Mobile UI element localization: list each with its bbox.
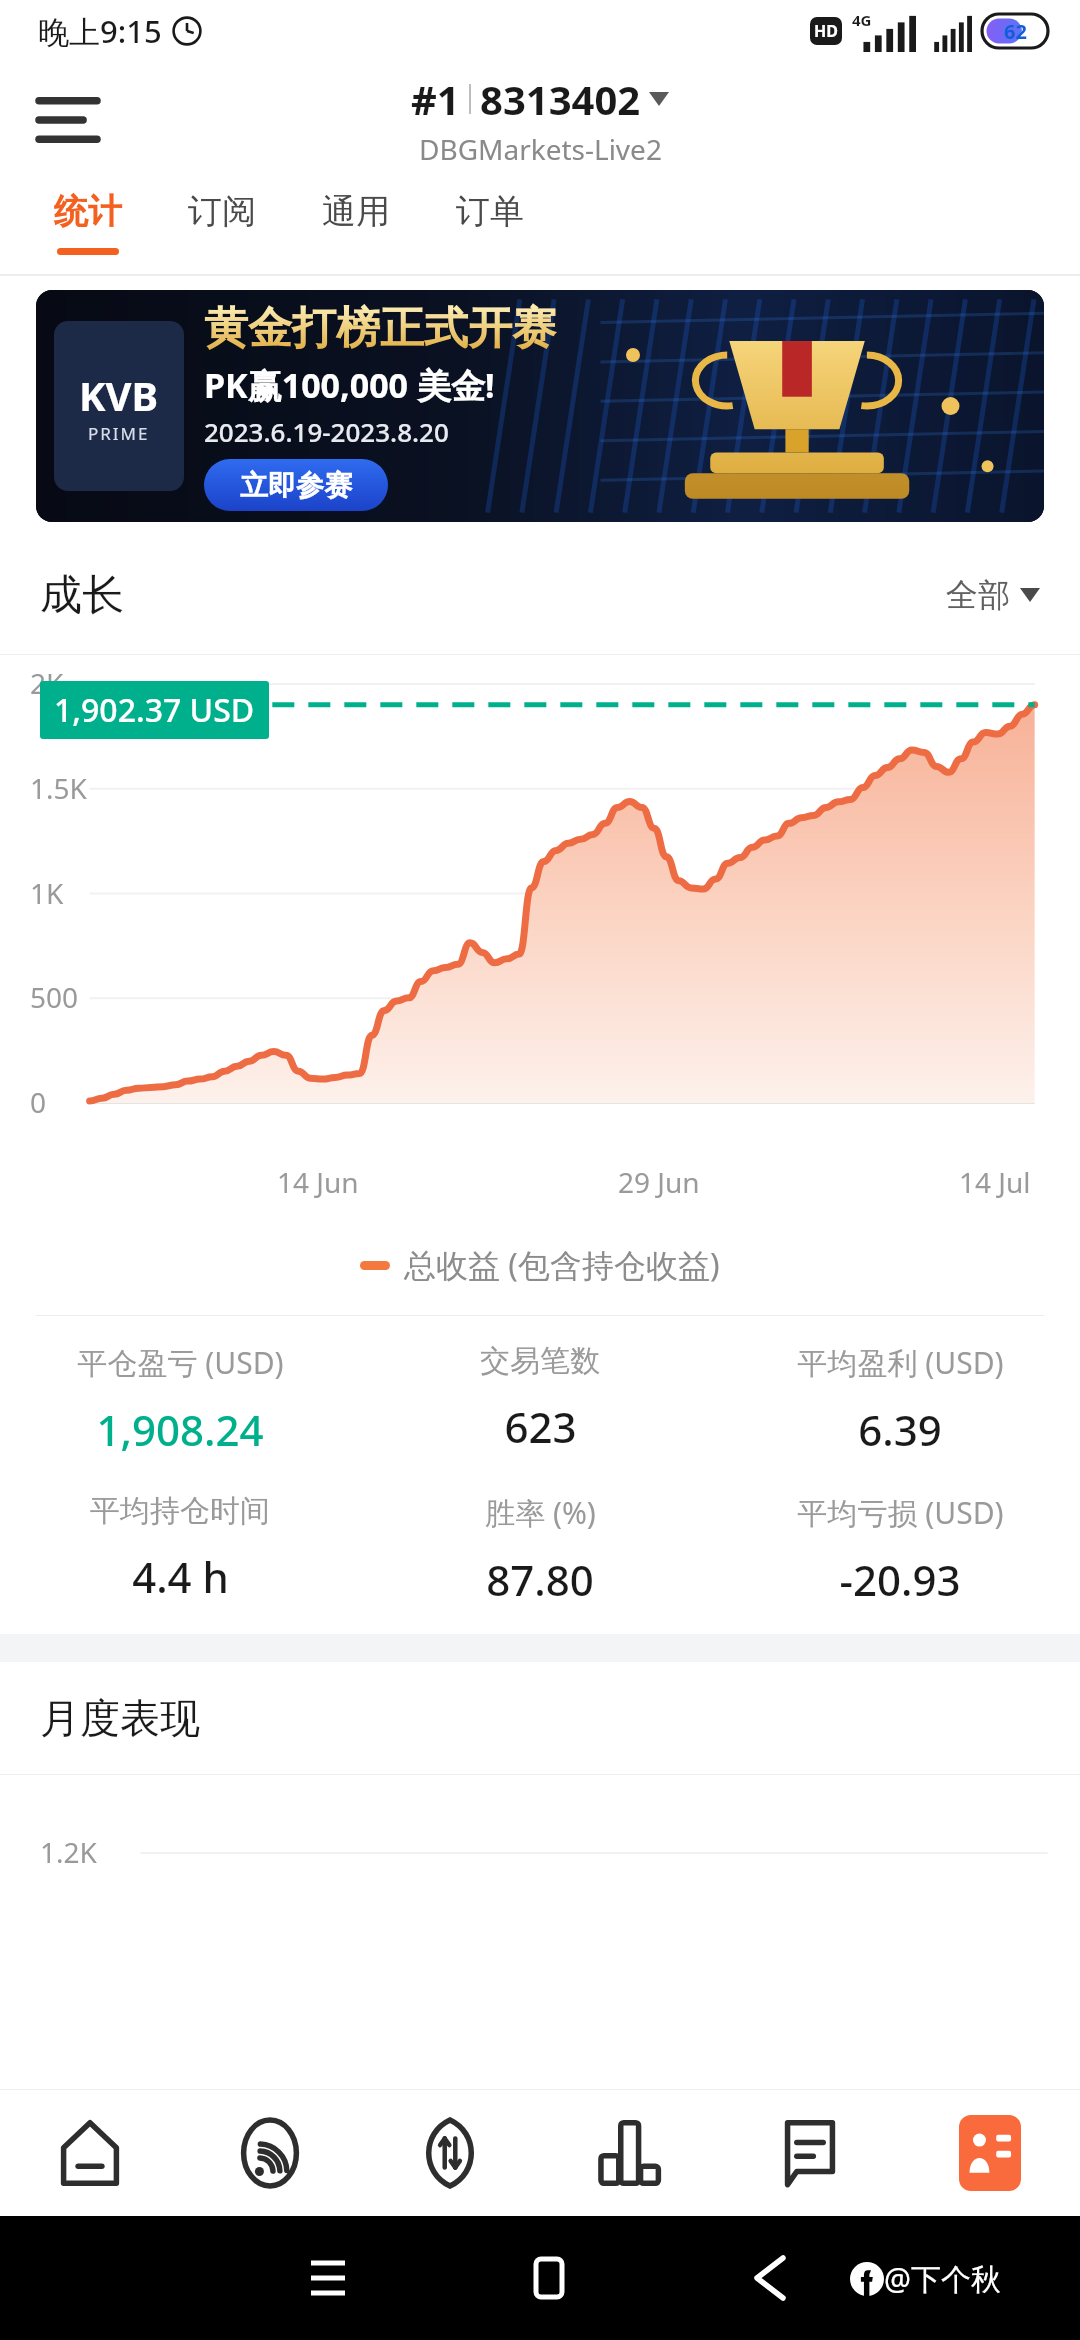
staticText: 1.5K xyxy=(30,769,87,807)
staticText: 14 Jul xyxy=(959,1163,1031,1201)
staticText: @下个秋 xyxy=(884,2258,1001,2299)
staticText: 统计 xyxy=(54,190,122,233)
button[interactable]: Back xyxy=(708,2216,832,2340)
staticText: DBGMarkets-Live2 xyxy=(419,130,662,168)
button[interactable]: 订单 xyxy=(436,178,544,244)
staticText: 订阅 xyxy=(188,190,256,233)
button[interactable]: Profile xyxy=(900,2090,1080,2216)
staticText: 平均持仓时间 xyxy=(90,1492,270,1530)
staticText: 0 xyxy=(30,1083,47,1121)
staticText: 14 Jun xyxy=(277,1163,359,1201)
button[interactable]: 平仓盈亏 (USD) xyxy=(0,1342,360,1458)
staticText: 胜率 (%) xyxy=(485,1492,596,1533)
button[interactable]: Home xyxy=(0,2090,180,2216)
staticText: 2K xyxy=(30,664,64,702)
staticText: PRIME xyxy=(88,422,150,445)
button[interactable]: Statistics xyxy=(540,2090,720,2216)
staticText: 4.4 h xyxy=(132,1548,229,1605)
button[interactable]: 统计 xyxy=(34,178,142,255)
button[interactable]: 订阅 xyxy=(168,178,276,244)
staticText: 6.39 xyxy=(858,1401,942,1458)
staticText: -20.93 xyxy=(839,1551,961,1608)
staticText: 订单 xyxy=(456,190,524,233)
button[interactable]: Home xyxy=(487,2216,611,2340)
staticText: 月度表现 xyxy=(40,1693,200,1743)
button[interactable]: Recents xyxy=(266,2216,390,2340)
staticText: 623 xyxy=(504,1398,577,1455)
staticText: 500 xyxy=(30,978,79,1016)
staticText: PK赢100,000 美金! xyxy=(204,362,495,408)
staticText: KVB xyxy=(79,368,159,422)
staticText: 全部 xyxy=(946,575,1010,615)
button[interactable]: 胜率 (%) xyxy=(360,1492,720,1608)
staticText: 1,908.24 xyxy=(96,1401,264,1458)
staticText: 黄金打榜正式开赛 xyxy=(204,301,556,356)
staticText: 1K xyxy=(30,874,64,912)
button[interactable]: 通用 xyxy=(302,178,410,244)
staticText: 4G xyxy=(852,10,872,30)
staticText: 2023.6.19-2023.8.20 xyxy=(204,414,449,449)
staticText: 交易笔数 xyxy=(480,1342,600,1380)
staticText: 立即参赛 xyxy=(240,468,352,503)
staticText: 29 Jun xyxy=(618,1163,700,1201)
button[interactable]: #1 xyxy=(411,72,669,168)
button[interactable]: Messages xyxy=(720,2090,900,2216)
button[interactable]: Menu xyxy=(20,72,116,168)
staticText: 通用 xyxy=(322,190,390,233)
staticText: 87.80 xyxy=(486,1551,594,1608)
button[interactable]: 全部 xyxy=(946,575,1040,615)
staticText: 成长 xyxy=(40,569,124,622)
button[interactable]: Signals xyxy=(180,2090,360,2216)
staticText: HD xyxy=(814,20,838,42)
button[interactable]: 平均亏损 (USD) xyxy=(720,1492,1080,1608)
button[interactable]: Trade xyxy=(360,2090,540,2216)
staticText: 1.2K xyxy=(40,1833,97,1871)
staticText: 平均盈利 (USD) xyxy=(797,1342,1004,1383)
staticText: #1 xyxy=(411,72,460,126)
staticText: 总收益 (包含持仓收益) xyxy=(404,1243,720,1287)
staticText: 62 xyxy=(1004,18,1027,45)
staticText: 8313402 xyxy=(480,72,641,126)
staticText: 晚上9:15 xyxy=(38,10,162,52)
staticText: 平仓盈亏 (USD) xyxy=(77,1342,284,1383)
button[interactable]: 立即参赛 xyxy=(204,459,388,511)
button[interactable]: 平均持仓时间 xyxy=(0,1492,360,1605)
button[interactable]: 交易笔数 xyxy=(360,1342,720,1455)
staticText: 平均亏损 (USD) xyxy=(797,1492,1004,1533)
button[interactable]: KVB xyxy=(36,290,1044,522)
staticText: 1,902.37 USD xyxy=(54,688,255,732)
button[interactable]: 平均盈利 (USD) xyxy=(720,1342,1080,1458)
